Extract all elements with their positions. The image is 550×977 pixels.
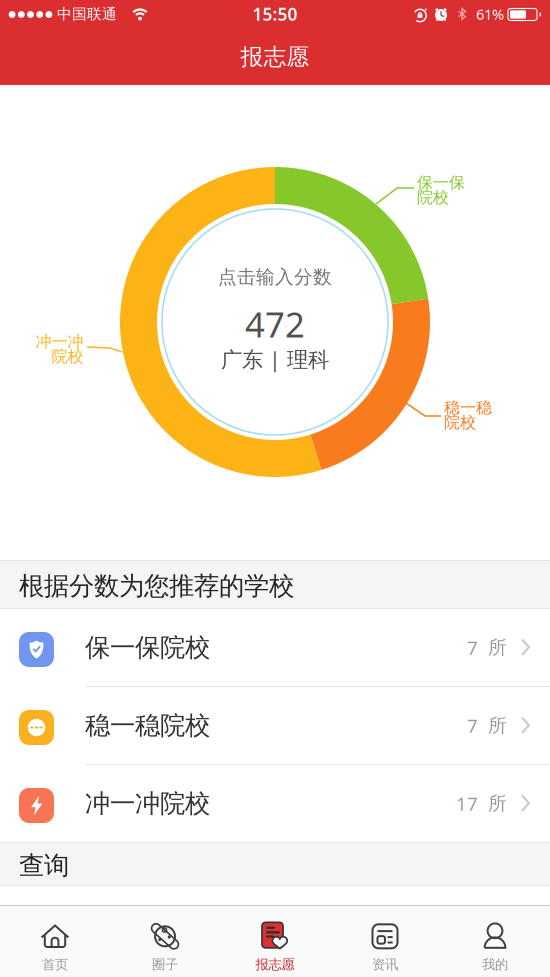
staticText: 资讯 [372, 956, 398, 973]
staticText: 根据分数为您推荐的学校 [19, 570, 294, 601]
staticText: 查询 [19, 850, 69, 881]
staticText: 报志愿 [255, 956, 294, 973]
staticText: 点击输入分数 [218, 265, 332, 288]
button[interactable]: 点击输入分数 [162, 209, 388, 435]
staticText: 7 [467, 713, 478, 738]
staticText: 首页 [42, 956, 68, 973]
staticText: 保一保 院校 [417, 173, 465, 207]
button[interactable]: 稳一稳院校 [0, 687, 550, 764]
staticText: 广东 | 理科 [221, 345, 329, 373]
button[interactable]: 首页 [0, 906, 110, 977]
staticText: 报志愿 [240, 43, 309, 71]
staticText: 我的 [482, 956, 508, 973]
staticText: 472 [245, 301, 305, 347]
staticText: 冲一冲 院校 [35, 332, 83, 366]
button[interactable]: 资讯 [330, 906, 440, 977]
staticText: 保一保院校 [85, 632, 210, 663]
staticText: 稳一稳 院校 [444, 398, 492, 432]
button[interactable]: 圈子 [110, 906, 220, 977]
staticText: 所 [488, 714, 507, 737]
staticText: 61% [476, 4, 504, 24]
button[interactable]: 我的 [440, 906, 550, 977]
staticText: 稳一稳院校 [85, 710, 210, 741]
staticText: 所 [488, 792, 507, 815]
staticText: 冲一冲院校 [85, 788, 210, 819]
button[interactable]: 报志愿 [220, 906, 330, 977]
staticText: 中国联通 [57, 5, 117, 23]
staticText: 所 [488, 636, 507, 659]
staticText: 圈子 [152, 956, 178, 973]
button[interactable]: 冲一冲院校 [0, 765, 550, 842]
staticText: 15:50 [252, 2, 297, 25]
staticText: 17 [456, 791, 478, 816]
staticText: 7 [467, 635, 478, 660]
button[interactable]: 保一保院校 [0, 609, 550, 686]
